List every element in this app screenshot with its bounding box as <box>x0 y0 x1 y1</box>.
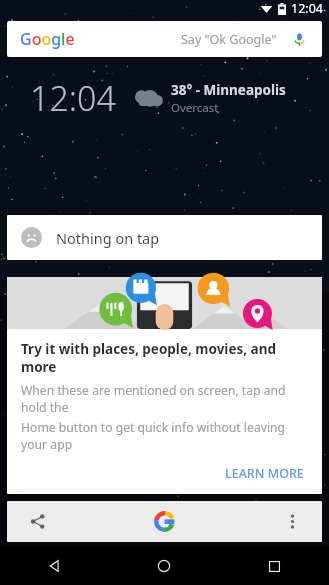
button[interactable]: Nothing on tap <box>7 215 322 260</box>
staticText: When these are mentioned on screen, tap … <box>21 382 310 416</box>
button[interactable]: Share <box>7 501 67 542</box>
staticText: Try it with places, people, movies, and … <box>21 340 310 376</box>
staticText: Overcast <box>171 100 219 116</box>
staticText: Say "Ok Google" <box>181 31 277 48</box>
staticText: Nothing on tap <box>56 228 160 248</box>
button[interactable]: Google <box>7 21 322 57</box>
staticText: LEARN MORE <box>225 465 304 482</box>
button[interactable]: Recent apps <box>219 547 329 585</box>
button[interactable]: LEARN MORE <box>221 463 308 484</box>
staticText: 38° - Minneapolis <box>171 81 286 99</box>
staticText: Home button to get quick info without le… <box>21 419 310 453</box>
staticText: 12:04 <box>30 75 116 121</box>
button[interactable]: Voice search <box>289 29 309 49</box>
button[interactable]: Google <box>144 501 185 542</box>
button[interactable]: Home <box>109 547 219 585</box>
staticText: 12:04 <box>291 0 323 17</box>
button[interactable]: Back <box>0 547 109 585</box>
staticText: Google <box>20 28 75 50</box>
button[interactable]: More options <box>262 501 322 542</box>
